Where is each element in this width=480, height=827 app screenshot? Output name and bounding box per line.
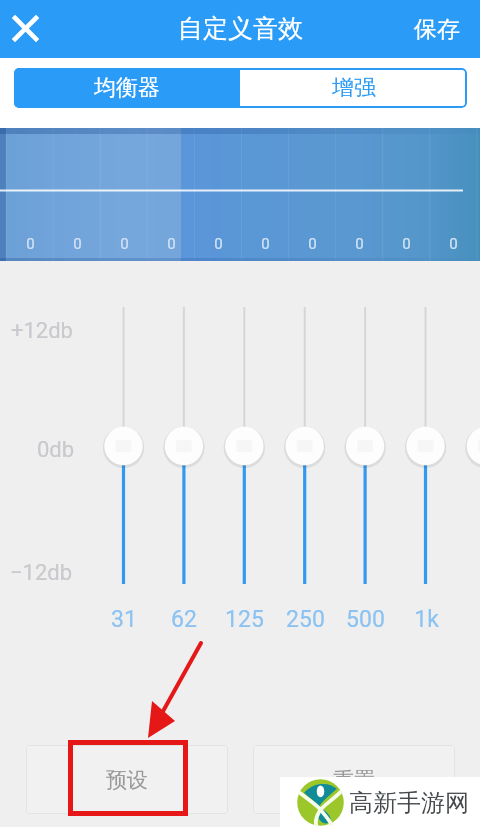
staticText: 1k: [414, 606, 439, 633]
button[interactable]: 重置: [253, 745, 455, 814]
button[interactable]: 增强: [240, 68, 467, 108]
staticText: 0: [26, 235, 35, 253]
staticText: 预设: [106, 767, 148, 793]
button[interactable]: 预设: [26, 745, 228, 814]
staticText: 0: [449, 235, 458, 253]
staticText: 62: [171, 606, 197, 633]
staticText: 重置: [333, 767, 375, 793]
staticText: 高新手游网: [349, 788, 469, 818]
staticText: 保存: [414, 15, 460, 44]
staticText: 0: [308, 235, 317, 253]
staticText: 0: [402, 235, 411, 253]
staticText: 0: [167, 235, 176, 253]
staticText: 0: [120, 235, 129, 253]
staticText: 0: [355, 235, 364, 253]
staticText: 增强: [332, 74, 376, 102]
staticText: 0: [73, 235, 82, 253]
button[interactable]: 保存: [392, 3, 480, 56]
staticText: 31: [111, 606, 137, 633]
staticText: 0: [261, 235, 270, 253]
staticText: 0db: [37, 437, 75, 463]
staticText: −12db: [10, 560, 73, 586]
staticText: 自定义音效: [178, 13, 303, 44]
staticText: 500: [346, 606, 385, 633]
staticText: +12db: [11, 318, 73, 344]
staticText: 125: [225, 606, 264, 633]
staticText: 0: [214, 235, 223, 253]
staticText: 均衡器: [94, 74, 160, 102]
button[interactable]: 均衡器: [14, 68, 240, 108]
button[interactable]: Close: [3, 6, 47, 50]
staticText: 250: [286, 606, 325, 633]
